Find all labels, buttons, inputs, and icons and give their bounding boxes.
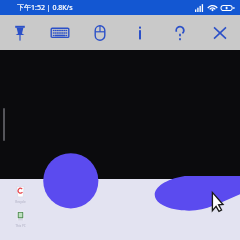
staticText: Recycle (15, 200, 26, 204)
staticText: 下午1:52 | 0.8K/s (17, 3, 73, 13)
button[interactable]: Mouse (80, 15, 120, 50)
button[interactable]: Help (160, 15, 200, 50)
button[interactable]: Close (200, 15, 240, 50)
button[interactable]: Pin (0, 15, 40, 50)
button[interactable]: Recycle (7, 184, 33, 204)
staticText: This PC (15, 224, 26, 228)
button[interactable]: Info (120, 15, 160, 50)
button[interactable]: Keyboard (40, 15, 80, 50)
button[interactable]: This PC (7, 208, 33, 228)
